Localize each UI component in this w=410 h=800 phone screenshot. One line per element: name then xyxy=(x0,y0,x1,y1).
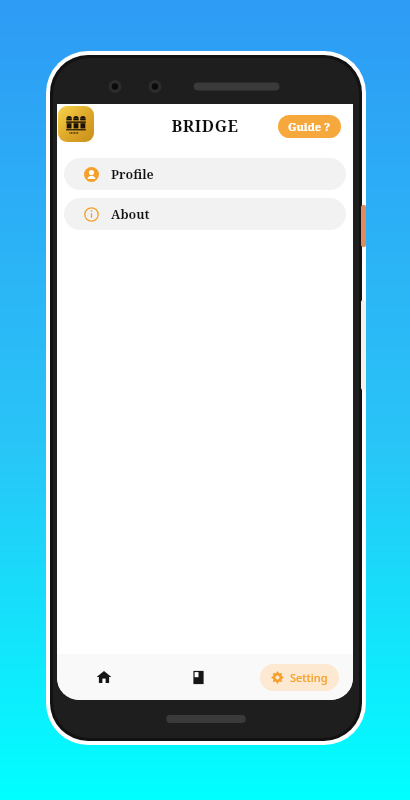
button[interactable]: Home xyxy=(57,654,151,700)
button[interactable]: Library xyxy=(151,654,245,700)
staticText: Guide ? xyxy=(288,119,331,134)
button[interactable]: About xyxy=(64,198,346,230)
button[interactable]: Setting xyxy=(260,664,339,691)
button[interactable]: Profile xyxy=(64,158,346,190)
staticText: BRIDGE xyxy=(171,115,239,137)
staticText: Setting xyxy=(290,670,328,685)
staticText: About xyxy=(111,206,150,223)
button[interactable]: Guide ? xyxy=(278,115,341,138)
staticText: Profile xyxy=(111,166,154,183)
button[interactable]: Bridge logo xyxy=(58,106,94,142)
